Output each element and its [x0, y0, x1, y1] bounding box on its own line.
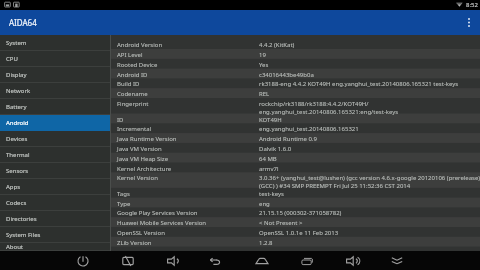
staticText: Java Runtime Version — [117, 135, 177, 143]
staticText: Network — [6, 87, 31, 95]
staticText: About — [6, 243, 24, 251]
staticText: KOT49H — [259, 116, 282, 124]
button[interactable]: Tags — [111, 188, 480, 198]
staticText: Rooted Device — [117, 61, 158, 69]
staticText: Incremental — [117, 125, 152, 133]
staticText: armv7l — [259, 165, 279, 173]
button[interactable]: Power — [67, 251, 99, 270]
staticText: Sensors — [6, 167, 29, 175]
button[interactable]: Devices — [0, 131, 110, 147]
staticText: Fingerprint — [117, 100, 149, 108]
button[interactable]: Codename — [111, 88, 480, 98]
staticText: ID — [117, 116, 124, 124]
button[interactable]: Home — [246, 251, 278, 270]
staticText: Tags — [117, 190, 130, 198]
staticText: Display — [6, 71, 27, 79]
staticText: Android Version — [117, 41, 163, 49]
button[interactable]: Huawei Mobile Services Version — [111, 217, 480, 227]
staticText: 3.0.36+ (yanghui_test@lushen) (gcc versi… — [259, 174, 480, 182]
staticText: Java VM Version — [117, 145, 162, 153]
staticText: Dalvik 1.6.0 — [259, 145, 292, 153]
button[interactable]: Android Version — [111, 39, 480, 49]
staticText: Build ID — [117, 80, 140, 88]
button[interactable]: Build ID — [111, 78, 480, 88]
button[interactable]: Java VM Version — [111, 143, 480, 153]
button[interactable]: Incremental — [111, 123, 480, 133]
staticText: eng.yanghui_test.20140806.165321:eng/tes… — [259, 108, 399, 116]
staticText: (GCC) ) #34 SMP PREEMPT Fri Jul 25 11:52… — [259, 182, 411, 190]
button[interactable]: System Files — [0, 227, 110, 243]
staticText: 4.4.2 (KitKat) — [259, 41, 295, 49]
staticText: Devices — [6, 135, 28, 143]
staticText: c34016443be49b0a — [259, 71, 314, 79]
staticText: Huawei Mobile Services Version — [117, 219, 207, 227]
button[interactable]: ID — [111, 114, 480, 124]
staticText: eng.yanghui_test.20140806.165321 — [259, 125, 359, 133]
button[interactable]: Codecs — [0, 195, 110, 211]
button[interactable]: Directories — [0, 211, 110, 227]
staticText: Kernel Architecture — [117, 165, 172, 173]
staticText: Codename — [117, 90, 148, 98]
button[interactable]: About — [0, 243, 110, 251]
staticText: < Not Present > — [259, 219, 303, 227]
staticText: OpenSSL 1.0.1e 11 Feb 2013 — [259, 229, 339, 237]
staticText: Android Runtime 0.9 — [259, 135, 317, 143]
staticText: Android ID — [117, 71, 148, 79]
button[interactable]: Volume up — [336, 251, 368, 270]
button[interactable]: Kernel Version — [111, 172, 480, 188]
button[interactable]: Android — [0, 115, 110, 131]
button[interactable]: More options — [458, 10, 480, 35]
button[interactable]: Battery — [0, 99, 110, 115]
staticText: REL — [259, 90, 270, 98]
staticText: 64 MB — [259, 155, 277, 163]
staticText: rk3188-eng 4.4.2 KOT49H eng.yanghui_test… — [259, 80, 459, 88]
staticText: 19 — [259, 51, 266, 59]
button[interactable]: Recent apps — [291, 251, 323, 270]
staticText: 21.15.15 (000302-371058782) — [259, 209, 342, 217]
button[interactable]: Sensors — [0, 163, 110, 179]
staticText: AIDA64 — [9, 17, 37, 28]
button[interactable]: Screenshot — [112, 251, 144, 270]
staticText: 8:52 — [466, 1, 478, 9]
button[interactable]: Display — [0, 67, 110, 83]
staticText: API Level — [117, 51, 143, 59]
staticText: Codecs — [6, 199, 27, 207]
staticText: Thermal — [6, 151, 30, 159]
staticText: test-keys — [259, 190, 284, 198]
staticText: Android — [6, 119, 29, 127]
staticText: Kernel Version — [117, 174, 158, 182]
button[interactable]: Java Runtime Version — [111, 133, 480, 143]
button[interactable]: Volume down — [157, 251, 189, 270]
button[interactable]: CPU — [0, 51, 110, 67]
staticText: 1.2.8 — [259, 239, 273, 247]
button[interactable]: Google Play Services Version — [111, 207, 480, 217]
staticText: Google Play Services Version — [117, 209, 198, 217]
button[interactable]: Apps — [0, 179, 110, 195]
button[interactable]: Back — [200, 251, 232, 270]
button[interactable]: Rooted Device — [111, 59, 480, 69]
button[interactable]: API Level — [111, 49, 480, 59]
staticText: Java VM Heap Size — [117, 155, 169, 163]
staticText: eng — [259, 200, 270, 208]
staticText: CPU — [6, 55, 18, 63]
staticText: Type — [117, 200, 131, 208]
button[interactable]: System — [0, 35, 110, 51]
button[interactable]: Android ID — [111, 69, 480, 79]
button[interactable]: Network — [0, 83, 110, 99]
button[interactable]: Kernel Architecture — [111, 163, 480, 173]
staticText: System — [6, 39, 27, 47]
staticText: Directories — [6, 215, 37, 223]
staticText: Apps — [6, 183, 21, 191]
button[interactable]: Hide navigation bar — [381, 251, 413, 270]
staticText: ZLib Version — [117, 239, 152, 247]
button[interactable]: Java VM Heap Size — [111, 153, 480, 163]
button[interactable]: Fingerprint — [111, 98, 480, 114]
button[interactable]: ZLib Version — [111, 237, 480, 247]
staticText: OpenSSL Version — [117, 229, 165, 237]
button[interactable]: OpenSSL Version — [111, 227, 480, 237]
staticText: Yes — [259, 61, 269, 69]
button[interactable]: Thermal — [0, 147, 110, 163]
staticText: rockchip/rk3188/rk3188:4.4.2/KOT49H/ — [259, 100, 369, 108]
button[interactable]: Type — [111, 198, 480, 208]
staticText: System Files — [6, 231, 41, 239]
